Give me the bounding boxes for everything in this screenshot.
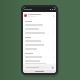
- button[interactable]: [23, 39, 56, 43]
- button[interactable]: Account: [23, 12, 56, 19]
- other: Account: [24, 14, 27, 17]
- button[interactable]: [23, 63, 56, 64]
- button[interactable]: [23, 47, 56, 51]
- button[interactable]: [23, 59, 56, 63]
- button[interactable]: [23, 27, 56, 31]
- button[interactable]: [25, 66, 50, 69]
- button[interactable]: [23, 23, 56, 27]
- button[interactable]: [23, 43, 56, 47]
- button[interactable]: [23, 55, 56, 59]
- button[interactable]: Send: [51, 66, 54, 69]
- button[interactable]: [23, 31, 56, 35]
